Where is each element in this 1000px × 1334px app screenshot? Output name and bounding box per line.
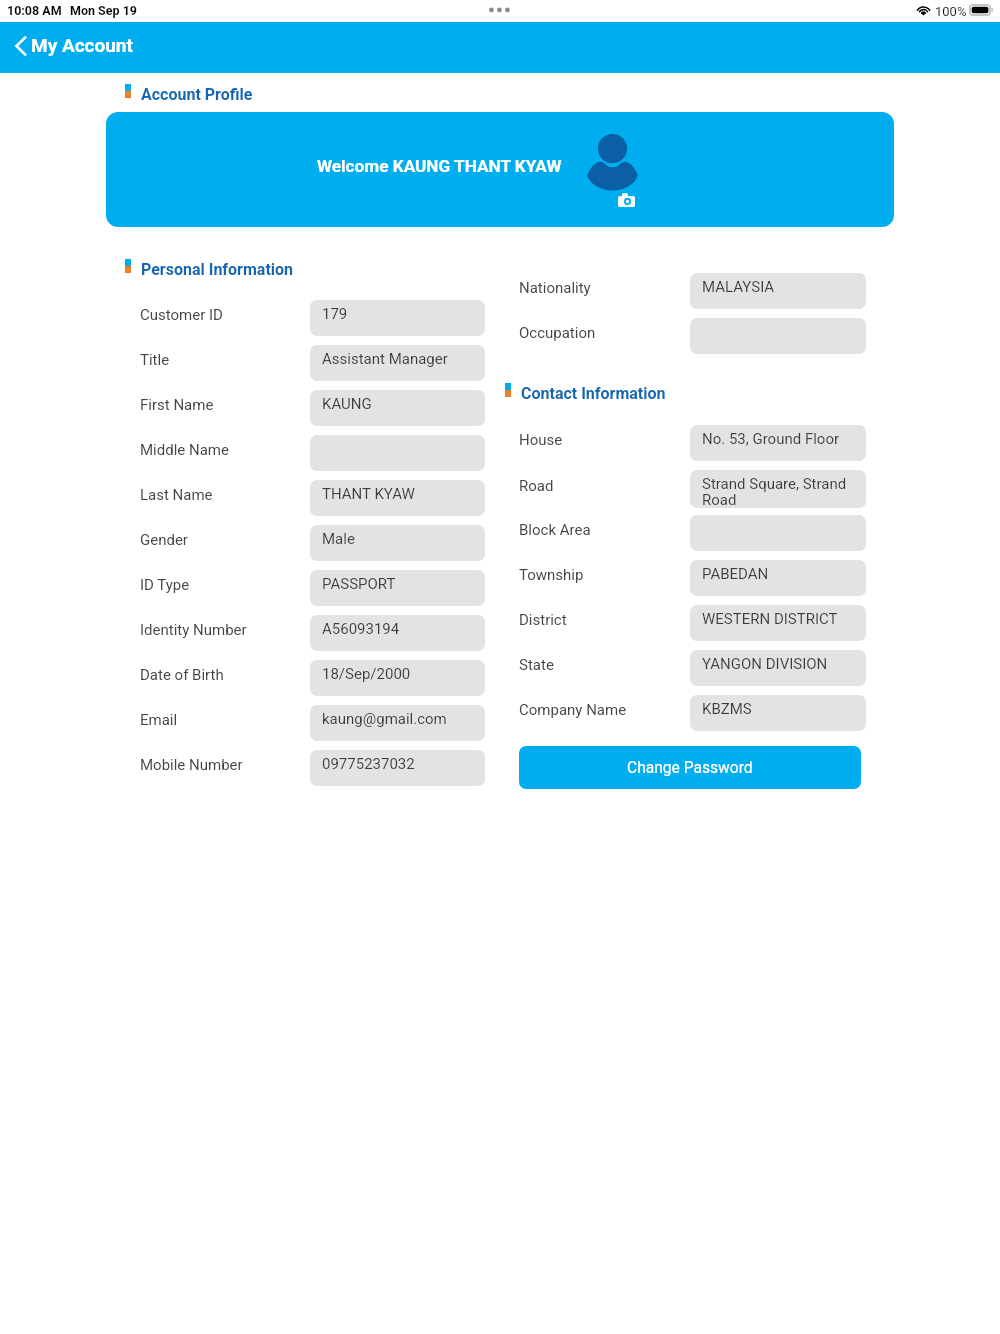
button[interactable]: District xyxy=(519,605,866,641)
staticText: Account Profile xyxy=(141,85,253,101)
button[interactable]: First Name xyxy=(140,390,485,426)
staticText: Road xyxy=(519,477,554,495)
staticText: 18/Sep/2000 xyxy=(322,665,411,683)
button[interactable]: Road xyxy=(519,470,866,508)
button[interactable]: Gender xyxy=(140,525,485,561)
staticText: Title xyxy=(140,351,170,369)
staticText: Company Name xyxy=(519,701,627,719)
staticText: PASSPORT xyxy=(322,575,396,593)
staticText: Nationality xyxy=(519,279,591,297)
staticText: 179 xyxy=(322,305,348,323)
staticText: State xyxy=(519,656,554,674)
button[interactable]: Mobile Number xyxy=(140,750,485,786)
button[interactable]: Date of Birth xyxy=(140,660,485,696)
staticText: My Account xyxy=(31,34,133,56)
staticText: YANGON DIVISION xyxy=(702,655,828,673)
staticText: Personal Information xyxy=(141,260,294,276)
staticText: Middle Name xyxy=(140,441,229,459)
staticText: Gender xyxy=(140,531,188,549)
staticText: House xyxy=(519,431,563,449)
button[interactable]: Block Area xyxy=(519,515,866,551)
button[interactable]: Back to My Account xyxy=(0,22,150,73)
staticText: Identity Number xyxy=(140,621,247,639)
staticText: 100% xyxy=(935,4,967,19)
staticText: No. 53, Ground Floor xyxy=(702,430,840,448)
staticText: Change Password xyxy=(627,759,753,777)
staticText: Date of Birth xyxy=(140,666,224,684)
staticText: Contact Information xyxy=(521,384,666,400)
button[interactable]: House xyxy=(519,425,866,461)
staticText: A56093194 xyxy=(322,620,400,638)
staticText: Welcome KAUNG THANT KYAW xyxy=(317,156,562,176)
staticText: Mon Sep 19 xyxy=(70,3,138,18)
button[interactable]: State xyxy=(519,650,866,686)
staticText: Block Area xyxy=(519,521,591,539)
button[interactable]: Company Name xyxy=(519,695,866,731)
button[interactable]: Nationality xyxy=(519,273,866,309)
staticText: District xyxy=(519,611,567,629)
button[interactable]: Last Name xyxy=(140,480,485,516)
button[interactable]: ID Type xyxy=(140,570,485,606)
staticText: MALAYSIA xyxy=(702,278,775,296)
button[interactable]: Identity Number xyxy=(140,615,485,651)
button[interactable]: Title xyxy=(140,345,485,381)
button[interactable]: Customer ID xyxy=(140,300,485,336)
staticText: WESTERN DISTRICT xyxy=(702,610,838,628)
staticText: 10:08 AM xyxy=(7,3,62,18)
staticText: First Name xyxy=(140,396,214,414)
staticText: KAUNG xyxy=(322,395,372,413)
button[interactable]: Change Password xyxy=(519,746,861,789)
staticText: Last Name xyxy=(140,486,213,504)
button[interactable]: Change profile photo xyxy=(587,134,641,208)
button[interactable]: Occupation xyxy=(519,318,866,354)
staticText: kaung@gmail.com xyxy=(322,710,447,728)
button[interactable]: Email xyxy=(140,705,485,741)
staticText: ID Type xyxy=(140,576,190,594)
staticText: Mobile Number xyxy=(140,756,243,774)
staticText: Assistant Manager xyxy=(322,350,448,368)
staticText: KBZMS xyxy=(702,700,752,718)
button[interactable]: Middle Name xyxy=(140,435,485,471)
staticText: Customer ID xyxy=(140,306,223,324)
staticText: Male xyxy=(322,530,355,548)
button[interactable]: Township xyxy=(519,560,866,596)
staticText: PABEDAN xyxy=(702,565,769,583)
staticText: THANT KYAW xyxy=(322,485,415,503)
staticText: Email xyxy=(140,711,178,729)
staticText: Strand Square, Strand Road xyxy=(702,475,862,508)
staticText: Township xyxy=(519,566,584,584)
staticText: 09775237032 xyxy=(322,755,415,773)
staticText: Occupation xyxy=(519,324,596,342)
